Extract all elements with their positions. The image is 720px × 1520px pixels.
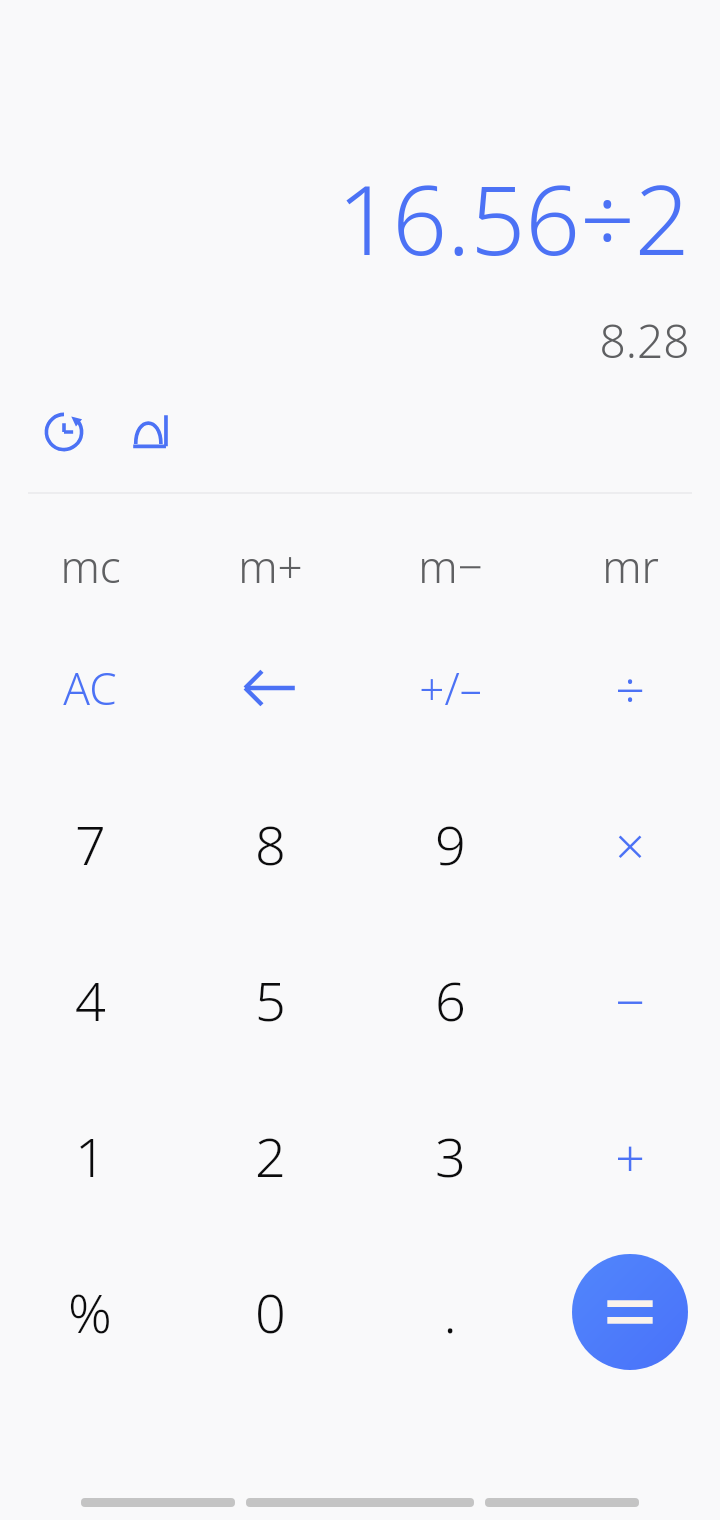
staticText: +/– <box>419 658 482 718</box>
button[interactable]: 5 <box>180 922 360 1078</box>
staticText: 1 <box>75 1119 106 1193</box>
staticText: 3 <box>435 1119 466 1193</box>
button[interactable]: mc <box>0 522 180 610</box>
button[interactable]: 0 <box>180 1234 360 1390</box>
button[interactable]: AC <box>0 610 180 766</box>
staticText: mr <box>602 536 659 596</box>
staticText: 2 <box>255 1119 286 1193</box>
button[interactable]: History <box>34 402 94 462</box>
staticText: mc <box>60 536 121 596</box>
button[interactable]: 3 <box>360 1078 540 1234</box>
button[interactable]: 9 <box>360 766 540 922</box>
button[interactable]: 2 <box>180 1078 360 1234</box>
staticText: ÷ <box>615 653 645 724</box>
button[interactable]: − <box>540 922 720 1078</box>
staticText: 7 <box>75 807 106 881</box>
staticText: 4 <box>75 963 106 1037</box>
button[interactable]: m− <box>360 522 540 610</box>
button[interactable]: × <box>540 766 720 922</box>
button[interactable]: 6 <box>360 922 540 1078</box>
staticText: 5 <box>255 963 286 1037</box>
staticText: 6 <box>435 963 466 1037</box>
staticText: % <box>68 1275 112 1349</box>
button[interactable]: 4 <box>0 922 180 1078</box>
staticText: 8.28 <box>599 309 690 372</box>
button[interactable]: . <box>360 1234 540 1390</box>
button[interactable]: 8 <box>180 766 360 922</box>
staticText: m+ <box>238 536 303 596</box>
button[interactable]: +/– <box>360 610 540 766</box>
staticText: m− <box>418 536 483 596</box>
button[interactable]: Graph <box>120 402 180 462</box>
button[interactable]: 1 <box>0 1078 180 1234</box>
staticText: × <box>615 809 645 880</box>
button[interactable]: m+ <box>180 522 360 610</box>
staticText: 9 <box>435 807 466 881</box>
button[interactable]: 7 <box>0 766 180 922</box>
staticText: . <box>443 1275 457 1349</box>
staticText: − <box>615 965 645 1036</box>
button[interactable]: + <box>540 1078 720 1234</box>
button[interactable]: Equals <box>572 1254 688 1370</box>
staticText: + <box>615 1121 645 1192</box>
staticText: AC <box>63 658 117 718</box>
button[interactable]: mr <box>540 522 720 610</box>
button[interactable]: % <box>0 1234 180 1390</box>
staticText: 8 <box>255 807 286 881</box>
button[interactable]: ÷ <box>540 610 720 766</box>
staticText: 16.56÷2 <box>337 152 690 283</box>
staticText: 0 <box>255 1275 286 1349</box>
button[interactable]: Backspace <box>180 610 360 766</box>
